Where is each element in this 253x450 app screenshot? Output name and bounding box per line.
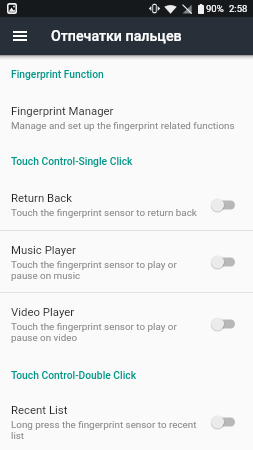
button[interactable]: Toggle — [211, 198, 235, 212]
staticText: Touch the fingerprint sensor to play or … — [11, 259, 177, 281]
staticText: 2:58 — [229, 3, 248, 14]
staticText: Video Player — [11, 305, 75, 318]
staticText: Fingerprint Function — [11, 68, 104, 80]
staticText: Отпечатки пальцев — [51, 28, 182, 45]
staticText: Touch Control-Single Click — [11, 155, 133, 167]
staticText: Return Back — [11, 191, 73, 204]
button[interactable]: Toggle — [211, 255, 235, 269]
button[interactable]: Fingerprint Manager — [0, 104, 253, 132]
staticText: Fingerprint Manager — [11, 104, 114, 117]
button[interactable]: Video Player — [0, 305, 253, 343]
button[interactable]: Return Back — [0, 191, 253, 219]
staticText: Touch the fingerprint sensor to return b… — [11, 207, 197, 219]
staticText: Touch Control-Double Click — [11, 369, 137, 381]
staticText: 90% — [206, 3, 224, 14]
staticText: Manage and set up the fingerprint relate… — [11, 120, 235, 132]
staticText: Touch the fingerprint sensor to play or … — [11, 321, 177, 343]
staticText: Music Player — [11, 243, 76, 256]
button[interactable]: Menu — [6, 22, 34, 50]
staticText: Recent List — [11, 403, 68, 416]
button[interactable]: Recent List — [0, 403, 253, 441]
staticText: Long press the fingerprint sensor to rec… — [11, 419, 197, 441]
button[interactable]: Toggle — [211, 317, 235, 331]
button[interactable]: Toggle — [211, 415, 235, 429]
button[interactable]: Music Player — [0, 243, 253, 281]
